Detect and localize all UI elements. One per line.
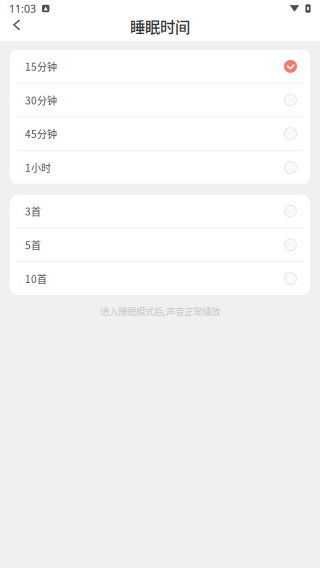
staticText: 进入睡眠模式后,声音正常播放: [100, 304, 220, 318]
button[interactable]: 1小时: [10, 151, 310, 184]
button[interactable]: 5首: [10, 228, 310, 261]
staticText: 睡眠时间: [130, 15, 190, 37]
staticText: 1小时: [25, 160, 51, 175]
button[interactable]: Back: [0, 17, 30, 41]
staticText: 15分钟: [25, 59, 57, 74]
button[interactable]: 15分钟: [10, 50, 310, 83]
staticText: 45分钟: [25, 126, 57, 141]
button[interactable]: 10首: [10, 262, 310, 295]
button[interactable]: 45分钟: [10, 117, 310, 150]
staticText: 30分钟: [25, 93, 57, 107]
button[interactable]: 30分钟: [10, 84, 310, 116]
staticText: 11:03: [9, 1, 36, 16]
staticText: 10首: [25, 271, 47, 286]
staticText: 3首: [25, 204, 41, 218]
button[interactable]: 3首: [10, 195, 310, 227]
staticText: 5首: [25, 238, 41, 252]
